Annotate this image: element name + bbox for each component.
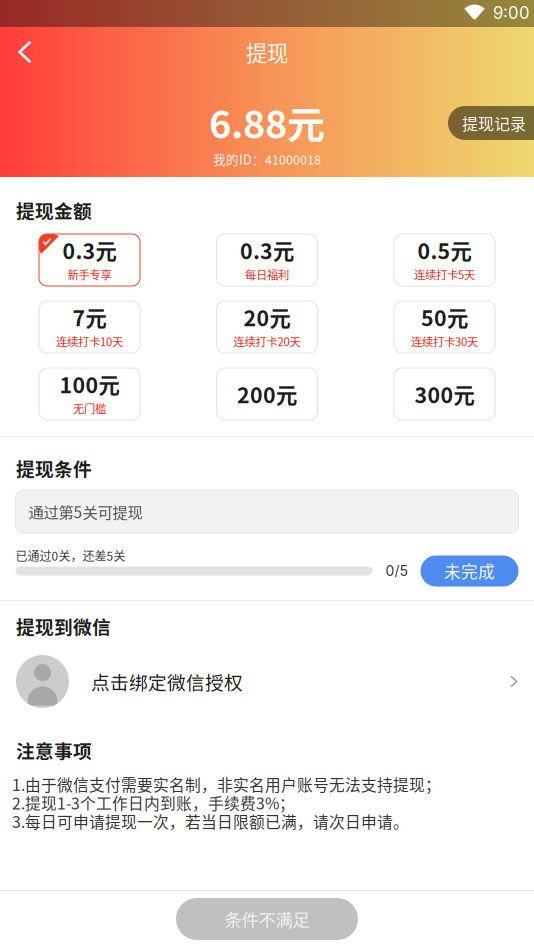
staticText: 6.88元 [209,94,325,149]
staticText: 提现到微信 [16,612,111,639]
staticText: 未完成 [444,559,495,583]
staticText: 注意事项 [16,736,92,763]
staticText: 连续打卡10天 [56,333,123,349]
button[interactable]: 未完成 [420,555,518,586]
staticText: 200元 [237,379,297,409]
staticText: 每日福利 [245,266,289,282]
staticText: 0.3元 [62,235,116,265]
staticText: 条件不满足 [224,906,309,932]
staticText: 提现金额 [16,196,92,223]
button[interactable]: 条件不满足 [176,898,358,940]
button[interactable]: 0.5元 [394,234,495,286]
staticText: 0/5 [385,562,408,579]
staticText: 提现 [246,37,288,67]
staticText: 0.3元 [240,235,294,265]
staticText: 连续打卡5天 [414,266,475,282]
staticText: 通过第5关可提现 [28,500,142,523]
staticText: 20元 [243,302,290,332]
button[interactable]: 0.3元 [39,234,140,286]
button[interactable]: 300元 [394,368,495,420]
staticText: 50元 [421,302,468,332]
button[interactable]: 7元 [39,301,140,353]
staticText: 9:00 [493,3,530,23]
staticText: 300元 [414,379,474,409]
staticText: 我的ID：41000018 [213,150,321,168]
staticText: 无门槛 [73,400,106,416]
staticText: 1.由于微信支付需要实名制，非实名用户账号无法支持提现； [12,773,441,796]
staticText: 提现条件 [16,454,92,481]
staticText: 新手专享 [67,266,111,282]
staticText: 0.5元 [417,235,471,265]
staticText: 7元 [72,302,106,332]
staticText: 已通过0关，还差5关 [15,547,125,564]
staticText: 3.每日可申请提现一次，若当日限额已满，请次日申请。 [12,810,409,833]
button[interactable]: 0.3元 [216,234,317,286]
button[interactable]: 点击绑定微信授权 [16,655,518,708]
staticText: 连续打卡20天 [233,333,300,349]
button[interactable]: 50元 [394,301,495,353]
button[interactable]: 提现记录 [448,106,534,140]
staticText: 点击绑定微信授权 [91,668,243,695]
button[interactable]: 20元 [216,301,317,353]
button[interactable]: 100元 [39,368,140,420]
staticText: 连续打卡30天 [411,333,478,349]
button[interactable]: 200元 [216,368,317,420]
staticText: 100元 [59,369,119,399]
staticText: 提现记录 [462,111,526,135]
staticText: 2.提现1-3个工作日内到账，手续费3%； [12,791,295,814]
button[interactable]: Back [2,29,48,75]
